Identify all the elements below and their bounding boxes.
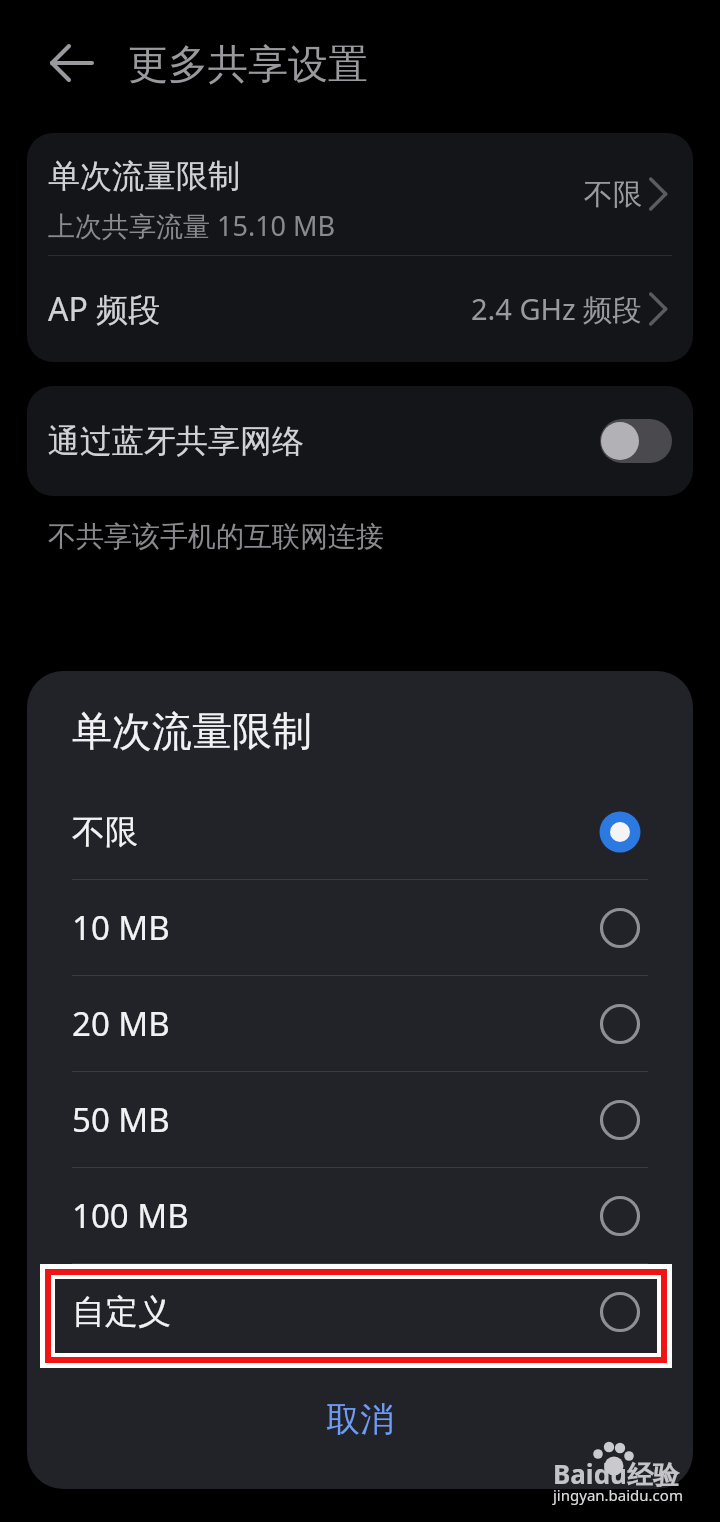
staticText: 上次共享流量 15.10 MB	[48, 207, 336, 244]
staticText: 2.4 GHz 频段	[471, 289, 642, 329]
staticText: jingyan.baidu.com	[553, 1485, 683, 1505]
staticText: 单次流量限制	[48, 156, 240, 196]
staticText: 20 MB	[72, 1001, 598, 1046]
button[interactable]: 20 MB	[27, 976, 693, 1071]
staticText: 不限	[584, 176, 642, 213]
button[interactable]: 50 MB	[27, 1072, 693, 1167]
button[interactable]: 10 MB	[27, 880, 693, 975]
button[interactable]: 单次流量限制	[27, 133, 693, 255]
staticText: 50 MB	[72, 1097, 598, 1142]
button[interactable]: 100 MB	[27, 1168, 693, 1263]
staticText: 单次流量限制	[72, 706, 312, 756]
staticText: AP 频段	[48, 287, 471, 331]
button[interactable]: 取消	[27, 1359, 693, 1479]
button[interactable]: 自定义	[27, 1264, 693, 1359]
staticText: 不限	[72, 811, 598, 853]
button[interactable]: 不限	[27, 784, 693, 879]
button[interactable]: Back	[44, 35, 100, 91]
staticText: 更多共享设置	[128, 39, 368, 89]
button[interactable]: AP 频段	[27, 256, 693, 362]
staticText: 通过蓝牙共享网络	[48, 421, 600, 461]
staticText: 取消	[326, 1398, 394, 1441]
staticText: 10 MB	[72, 905, 598, 950]
staticText: 不共享该手机的互联网连接	[48, 519, 384, 554]
button[interactable]: Bluetooth tethering toggle	[600, 419, 672, 463]
button[interactable]: 通过蓝牙共享网络	[27, 386, 693, 496]
staticText: 自定义	[72, 1291, 598, 1333]
staticText: 100 MB	[72, 1193, 598, 1238]
staticText: Baidu经验	[553, 1456, 679, 1492]
